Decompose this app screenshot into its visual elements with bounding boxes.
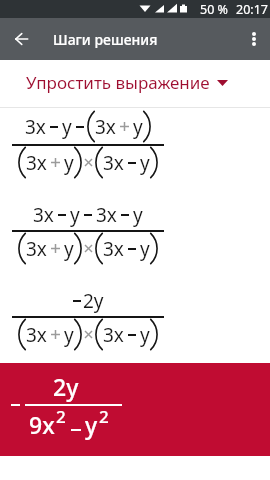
button[interactable]: More options (230, 19, 270, 59)
staticText: y (64, 150, 74, 176)
staticText: 50 % (200, 1, 228, 18)
staticText: y (64, 322, 74, 348)
staticText: 2y (53, 371, 79, 402)
staticText: y (140, 236, 150, 262)
button[interactable]: Back (0, 19, 40, 59)
staticText: y (64, 236, 74, 262)
staticText: 3x (95, 114, 116, 140)
staticText: y (133, 202, 143, 228)
staticText: 3x (103, 150, 124, 176)
staticText: 3x (103, 322, 124, 348)
staticText: 3x (103, 236, 124, 262)
staticText: 3x (26, 150, 47, 176)
staticText: 3x (25, 114, 46, 140)
staticText: y (70, 202, 80, 228)
staticText: 9x (29, 409, 55, 440)
button[interactable]: Упростить выражение (0, 60, 270, 108)
staticText: 2 (56, 405, 66, 428)
staticText: 3x (96, 202, 117, 228)
staticText: 2y (83, 288, 104, 314)
staticText: 3x (33, 202, 54, 228)
staticText: y (85, 409, 98, 440)
staticText: 3x (26, 236, 47, 262)
staticText: y (140, 150, 150, 176)
staticText: Шаги решения (53, 30, 158, 49)
staticText: 20:17 (236, 1, 268, 18)
staticText: 3x (26, 322, 47, 348)
staticText: y (140, 322, 150, 348)
staticText: y (62, 114, 72, 140)
staticText: y (133, 114, 143, 140)
staticText: 2 (99, 405, 109, 428)
staticText: Упростить выражение (26, 71, 210, 94)
